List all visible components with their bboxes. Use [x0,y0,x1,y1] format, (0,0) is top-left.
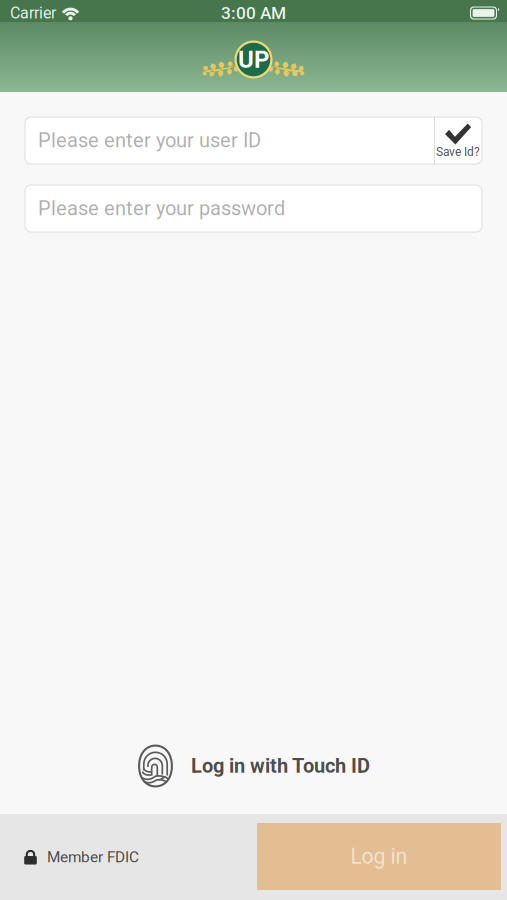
staticText: Member FDIC [47,848,139,866]
staticText: Please enter your user ID [38,129,261,152]
staticText: Log in with Touch ID [191,754,370,778]
staticText: Save Id? [436,145,480,159]
staticText: UP [238,45,269,73]
staticText: 3:00 AM [221,3,286,23]
staticText: Please enter your password [38,197,285,220]
button[interactable]: Please enter your password [25,185,482,232]
staticText: Log in [350,844,407,869]
button[interactable]: Please enter your user ID [25,117,482,164]
button[interactable]: Log in with Touch ID [137,743,370,789]
staticText: Carrier [10,4,56,22]
button[interactable]: Log in [257,823,501,890]
